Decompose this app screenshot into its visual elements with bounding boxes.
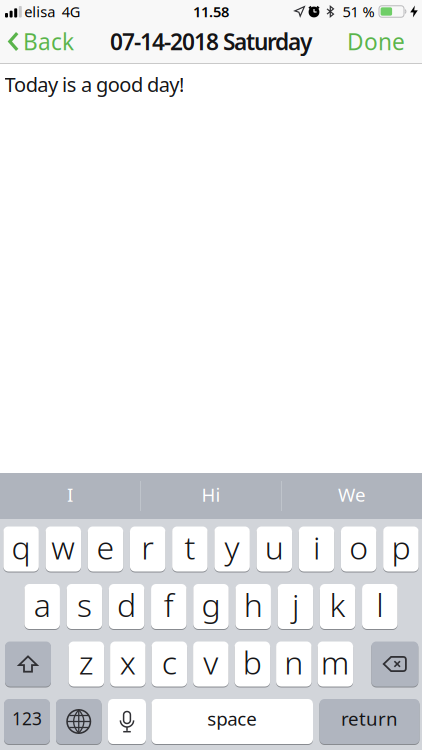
staticText: 11.58 xyxy=(193,2,229,21)
staticText: m xyxy=(321,641,350,683)
button[interactable]: q xyxy=(3,526,39,572)
button[interactable]: h xyxy=(235,583,271,629)
button[interactable]: p xyxy=(383,526,419,572)
button[interactable]: o xyxy=(341,526,376,572)
staticText: k xyxy=(330,583,346,626)
button[interactable]: Shift xyxy=(5,641,51,687)
staticText: Today is a good day! xyxy=(4,71,184,98)
staticText: 123 xyxy=(12,707,42,730)
staticText: r xyxy=(141,526,154,568)
button[interactable]: f xyxy=(151,583,187,629)
staticText: i xyxy=(313,526,320,568)
button[interactable]: d xyxy=(109,583,144,629)
button[interactable]: Dictate xyxy=(108,698,146,744)
button[interactable]: a xyxy=(24,583,60,629)
staticText: y xyxy=(225,526,240,568)
staticText: 07-14-2018 Saturday xyxy=(110,26,312,56)
staticText: a xyxy=(34,583,51,626)
staticText: j xyxy=(292,583,299,626)
staticText: Back xyxy=(23,26,74,56)
button[interactable]: y xyxy=(214,526,250,572)
staticText: t xyxy=(184,526,195,568)
button[interactable]: space xyxy=(151,698,313,744)
button[interactable]: Done xyxy=(347,26,422,56)
button[interactable]: Back xyxy=(0,26,74,56)
button[interactable]: i xyxy=(299,526,334,572)
staticText: u xyxy=(265,526,284,568)
staticText: q xyxy=(12,526,31,568)
staticText: g xyxy=(201,583,220,626)
button[interactable]: m xyxy=(318,641,353,687)
button[interactable]: x xyxy=(110,641,146,687)
staticText: We xyxy=(338,482,366,507)
staticText: v xyxy=(203,641,218,683)
staticText: l xyxy=(376,583,383,626)
button[interactable]: 123 xyxy=(4,698,50,744)
button[interactable]: Next keyboard xyxy=(56,698,101,744)
staticText: elisa xyxy=(24,2,55,21)
staticText: x xyxy=(120,641,136,683)
button[interactable]: I xyxy=(0,473,140,519)
button[interactable]: s xyxy=(67,583,102,629)
staticText: o xyxy=(349,526,368,568)
staticText: 4G xyxy=(62,2,81,21)
staticText: Hi xyxy=(201,482,220,507)
button[interactable]: Hi xyxy=(141,473,281,519)
button[interactable]: n xyxy=(276,641,312,687)
staticText: I xyxy=(67,482,73,507)
staticText: space xyxy=(207,706,257,731)
staticText: z xyxy=(79,641,94,683)
button[interactable]: j xyxy=(278,583,313,629)
button[interactable]: Delete xyxy=(371,641,418,687)
button[interactable]: b xyxy=(235,641,270,687)
button[interactable]: r xyxy=(130,526,165,572)
button[interactable]: w xyxy=(45,526,81,572)
staticText: w xyxy=(51,526,75,568)
button[interactable]: k xyxy=(320,583,355,629)
staticText: b xyxy=(243,641,262,683)
staticText: return xyxy=(341,706,398,731)
staticText: e xyxy=(96,526,114,568)
button[interactable]: l xyxy=(362,583,397,629)
staticText: h xyxy=(244,583,263,626)
staticText: f xyxy=(164,583,174,626)
button[interactable]: v xyxy=(193,641,229,687)
button[interactable]: c xyxy=(152,641,187,687)
button[interactable]: return xyxy=(319,698,419,744)
staticText: d xyxy=(117,583,136,626)
button[interactable]: We xyxy=(282,473,422,519)
button[interactable]: u xyxy=(256,526,292,572)
staticText: p xyxy=(391,526,410,568)
staticText: n xyxy=(284,641,303,683)
staticText: 51 % xyxy=(342,2,374,21)
button[interactable]: g xyxy=(193,583,229,629)
button[interactable]: e xyxy=(88,526,123,572)
button[interactable]: t xyxy=(172,526,208,572)
staticText: s xyxy=(77,583,92,626)
staticText: Done xyxy=(347,26,405,56)
staticText: c xyxy=(162,641,177,683)
button[interactable]: z xyxy=(69,641,104,687)
